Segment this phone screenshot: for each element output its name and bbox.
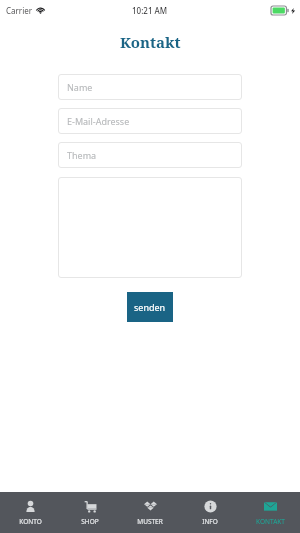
staticText: SHOP [81, 517, 99, 526]
staticText: KONTAKT [256, 517, 285, 526]
button[interactable]: E-Mail-Adresse [58, 108, 242, 134]
staticText: E-Mail-Adresse [67, 115, 130, 127]
button[interactable]: KONTAKT [240, 492, 300, 533]
staticText: senden [134, 301, 166, 313]
staticText: MUSTER [137, 517, 163, 526]
staticText: Kontakt [120, 32, 181, 52]
staticText: Carrier [6, 5, 33, 16]
button[interactable]: Name [58, 74, 242, 100]
button[interactable]: senden [127, 292, 173, 322]
staticText: Thema [67, 149, 97, 161]
button[interactable]: KONTO [0, 492, 60, 533]
staticText: 10:21 AM [132, 5, 168, 16]
button[interactable]: MUSTER [120, 492, 180, 533]
button[interactable]: Thema [58, 142, 242, 168]
button[interactable] [58, 177, 242, 278]
button[interactable]: SHOP [60, 492, 120, 533]
staticText: KONTO [19, 517, 42, 526]
staticText: INFO [202, 517, 218, 526]
staticText: Name [67, 81, 93, 93]
button[interactable]: INFO [180, 492, 240, 533]
